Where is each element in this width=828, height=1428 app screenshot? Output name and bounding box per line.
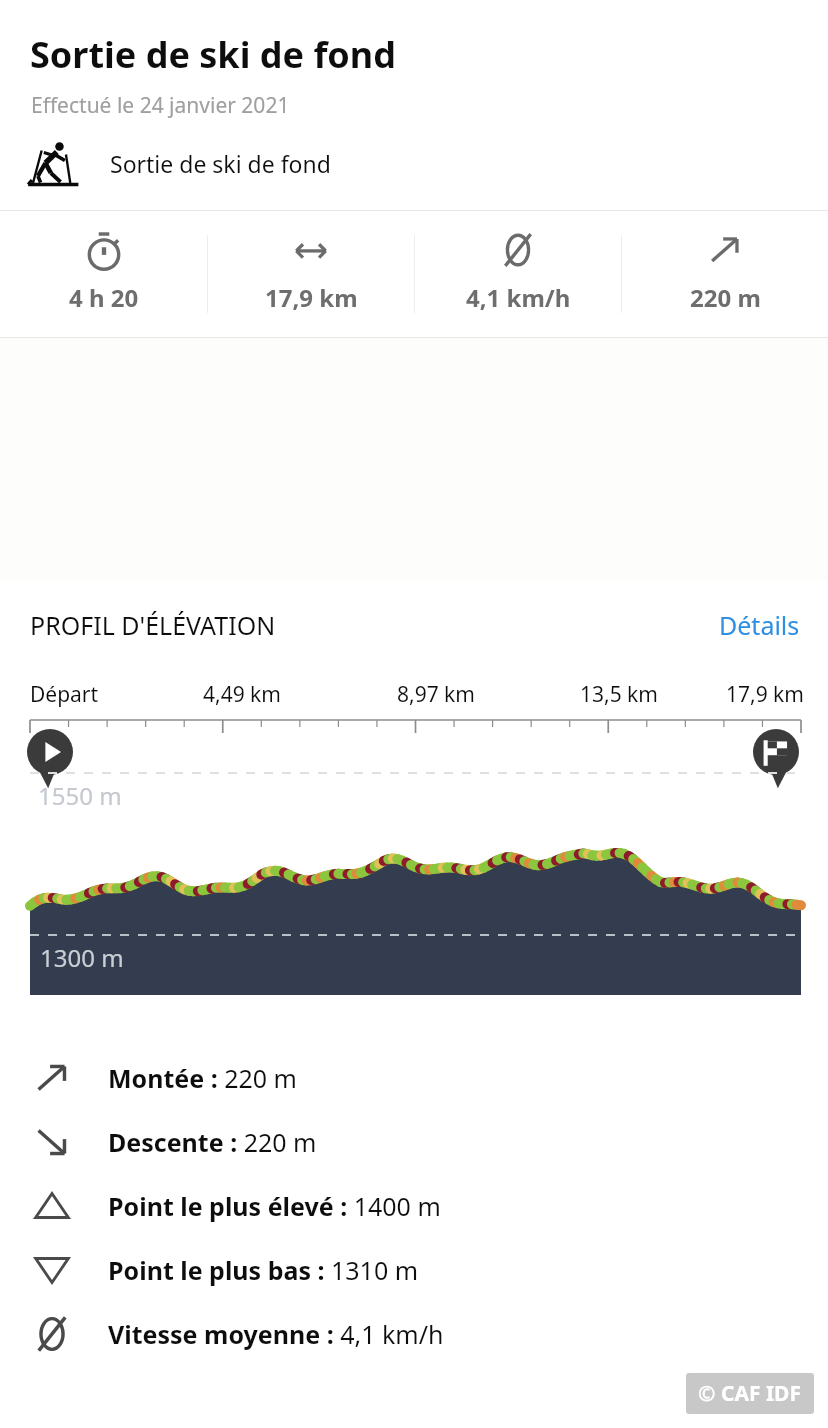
staticText: 17,9 km	[726, 680, 804, 709]
staticText: Sortie de ski de fond	[30, 30, 396, 79]
staticText: 1300 m	[40, 941, 124, 974]
button[interactable]: Ascent	[622, 211, 828, 337]
staticText: 220 m	[690, 281, 761, 314]
button[interactable]: Point le plus élevé : 1400 m	[0, 1174, 828, 1238]
staticText: 13,5 km	[580, 680, 658, 709]
staticText: Détails	[719, 608, 800, 642]
button[interactable]: Sortie de ski de fond	[0, 138, 828, 188]
staticText: 4,49 km	[203, 680, 281, 709]
button[interactable]: Descente : 220 m	[0, 1110, 828, 1174]
staticText: Sortie de ski de fond	[110, 148, 331, 179]
button[interactable]: Vitesse moyenne : 4,1 km/h	[0, 1302, 828, 1366]
staticText: Montée : 220 m	[108, 1061, 297, 1095]
staticText: 8,97 km	[397, 680, 475, 709]
staticText: Vitesse moyenne : 4,1 km/h	[108, 1317, 444, 1351]
button[interactable]: Duration	[0, 211, 207, 337]
staticText: Point le plus élevé : 1400 m	[108, 1189, 441, 1223]
button[interactable]: Détails	[715, 602, 804, 648]
staticText: PROFIL D'ÉLÉVATION	[30, 608, 276, 642]
staticText: © CAF IDF	[698, 1379, 802, 1408]
staticText: Point le plus bas : 1310 m	[108, 1253, 419, 1287]
staticText: Départ	[30, 680, 99, 709]
staticText: 1550 m	[38, 779, 122, 812]
button[interactable]: Average speed	[415, 211, 621, 337]
staticText: 17,9 km	[265, 281, 358, 314]
button[interactable]: Point le plus bas : 1310 m	[0, 1238, 828, 1302]
staticText: 4 h 20	[69, 281, 139, 314]
button[interactable]: Distance	[208, 211, 414, 337]
button[interactable]: Montée : 220 m	[0, 1046, 828, 1110]
staticText: Descente : 220 m	[108, 1125, 317, 1159]
staticText: Effectué le 24 janvier 2021	[31, 91, 290, 120]
staticText: 4,1 km/h	[466, 281, 571, 314]
